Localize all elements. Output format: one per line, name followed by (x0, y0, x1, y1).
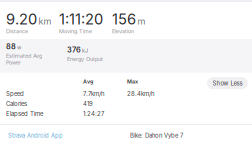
staticText: Avg (83, 78, 93, 85)
button[interactable]: Strava Android App (8, 132, 63, 139)
staticText: Distance (6, 28, 28, 35)
staticText: km (38, 16, 51, 27)
staticText: Energy Output (67, 56, 103, 62)
staticText: 1:24:27 (83, 110, 104, 117)
staticText: Speed (6, 90, 24, 97)
staticText: 376 (67, 45, 81, 54)
staticText: m (137, 16, 145, 27)
staticText: 88 (6, 42, 16, 51)
staticText: Bike: Dahon Vybe 7 (130, 132, 183, 139)
staticText: Elapsed Time (6, 110, 43, 117)
staticText: w (17, 44, 21, 50)
staticText: 9.20 (6, 10, 37, 28)
staticText: Calories (6, 100, 27, 107)
staticText: 7.7km/h (83, 90, 105, 97)
staticText: Estimated Avg Power (6, 52, 42, 66)
staticText: 1:11:20 (59, 10, 103, 28)
button[interactable]: Show Less (207, 77, 248, 89)
staticText: Strava Android App (8, 132, 63, 139)
staticText: 419 (83, 100, 93, 107)
staticText: Show Less (212, 80, 242, 87)
staticText: Max (127, 78, 138, 85)
staticText: kJ (82, 47, 88, 54)
staticText: 156 (112, 10, 136, 28)
staticText: Elevation (112, 28, 134, 35)
staticText: Moving Time (59, 28, 92, 35)
staticText: 28.4km/h (127, 90, 155, 97)
